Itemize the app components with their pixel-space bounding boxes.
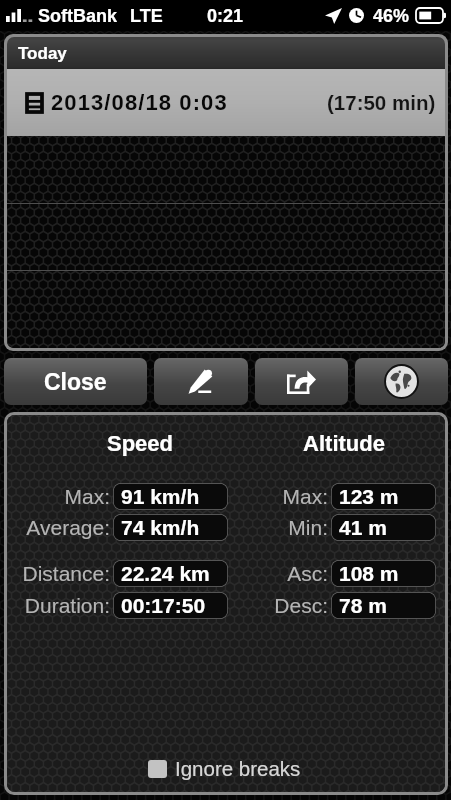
staticText: Max: — [248, 485, 328, 508]
button[interactable]: Map — [355, 358, 448, 405]
button[interactable]: Close — [4, 358, 147, 405]
staticText: Today — [18, 44, 67, 63]
staticText: 123 m — [339, 485, 399, 508]
staticText: 41 m — [339, 516, 387, 539]
staticText: 2013/08/18 0:03 — [51, 90, 228, 115]
staticText: 108 m — [339, 562, 399, 585]
staticText: 91 km/h — [121, 485, 200, 508]
staticText: 74 km/h — [121, 516, 200, 539]
staticText: Asc: — [248, 562, 328, 585]
button[interactable]: Edit — [154, 358, 248, 405]
staticText: Speed — [99, 431, 181, 456]
button[interactable]: Ignore breaks — [148, 757, 301, 780]
staticText: 46% — [373, 6, 410, 26]
staticText: 22.24 km — [121, 562, 210, 585]
staticText: Close — [44, 369, 107, 395]
button[interactable]: 2013/08/18 0:03 — [7, 69, 445, 136]
staticText: 0:21 — [207, 6, 244, 26]
staticText: Average: — [7, 516, 110, 539]
staticText: 00:17:50 — [121, 594, 206, 617]
staticText: (17:50 min) — [327, 91, 436, 114]
staticText: Distance: — [7, 562, 110, 585]
staticText: Min: — [248, 516, 328, 539]
staticText: Ignore breaks — [175, 757, 301, 780]
staticText: Max: — [7, 485, 110, 508]
button[interactable]: Share — [255, 358, 348, 405]
staticText: Altitude — [303, 431, 385, 456]
staticText: LTE — [130, 6, 163, 26]
staticText: 78 m — [339, 594, 387, 617]
staticText: Desc: — [248, 594, 328, 617]
staticText: SoftBank — [38, 6, 118, 26]
staticText: Duration: — [7, 594, 110, 617]
